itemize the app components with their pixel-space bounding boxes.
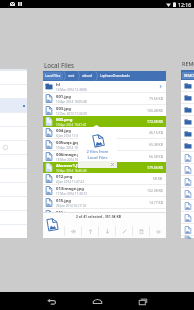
- staticText: 12 Dec 2013 11:32:29: [56, 112, 87, 116]
- staticText: 172.38 KB: [147, 119, 163, 124]
- button[interactable]: hl: [43, 81, 166, 92]
- staticText: 003.jpg: [56, 106, 71, 112]
- staticText: 006image.png: [56, 152, 86, 158]
- staticText: 100.48 KB: [147, 108, 163, 113]
- button[interactable]: [181, 200, 194, 211]
- button[interactable]: [181, 92, 194, 103]
- button[interactable]: Close: [111, 163, 114, 166]
- staticText: 2 of 41 selected - 351.94 KB: [76, 214, 121, 219]
- button[interactable]: sdcard: [80, 72, 95, 80]
- button[interactable]: Upload: [82, 224, 98, 238]
- staticText: 17 Mar 2014 11:30:12: [56, 192, 88, 196]
- button[interactable]: Home: [82, 292, 112, 310]
- staticText: LephoneDownloads: [100, 74, 130, 78]
- staticText: 102.38 KB: [147, 188, 163, 193]
- button[interactable]: [181, 116, 194, 127]
- staticText: sdcard: [82, 74, 93, 78]
- staticText: 18.64 KB: [149, 212, 163, 217]
- staticText: 179.56 KB: [147, 165, 163, 170]
- staticText: 26 Jan 2014 16:17:14: [56, 204, 86, 208]
- button[interactable]: [0, 141, 27, 154]
- staticText: 10 Apr 2014 10:48:52: [56, 146, 87, 150]
- staticText: mnt: [68, 74, 75, 78]
- staticText: 2 files from Local Files: [83, 149, 112, 160]
- staticText: 46.16 KB: [149, 130, 163, 135]
- button[interactable]: [181, 164, 194, 175]
- button[interactable]: Download: [99, 224, 115, 238]
- staticText: 6 Jan 2014 11:31:34: [56, 134, 85, 138]
- button[interactable]: Edit: [116, 224, 132, 238]
- staticText: 66.38 KB: [149, 154, 163, 159]
- staticText: 12:16: [178, 1, 192, 8]
- button[interactable]: [181, 236, 194, 238]
- button[interactable]: 015.jpg: [43, 197, 166, 208]
- staticText: 10 Apr 2014 10:41:41: [56, 123, 87, 127]
- button[interactable]: 003.jpg: [43, 105, 166, 116]
- staticText: 003.png: [56, 117, 73, 123]
- button[interactable]: 005wqs.jpg: [43, 139, 166, 150]
- button[interactable]: [181, 224, 194, 235]
- button[interactable]: [0, 99, 27, 112]
- button[interactable]: Recents: [128, 292, 158, 310]
- staticText: Local Files: [45, 74, 61, 78]
- button[interactable]: 016.jpg: [43, 209, 166, 220]
- button[interactable]: Local Files: [43, 72, 63, 80]
- button[interactable]: [181, 128, 194, 139]
- button[interactable]: LephoneDownloads: [98, 72, 132, 80]
- staticText: 015.jpg: [56, 198, 71, 204]
- button[interactable]: 001.jpg: [43, 93, 166, 104]
- staticText: 10 Apr 2014 16:45:45: [56, 169, 87, 173]
- staticText: hl: [56, 82, 60, 88]
- staticText: 013image.jpg: [56, 186, 84, 192]
- button[interactable]: [181, 80, 194, 91]
- button[interactable]: Delete: [133, 224, 149, 238]
- button[interactable]: [181, 104, 194, 115]
- staticText: REMOTE: [182, 60, 194, 67]
- staticText: 005wqs.jpg: [56, 140, 80, 146]
- staticText: 79.56 KB: [149, 96, 163, 101]
- button[interactable]: [181, 140, 194, 151]
- staticText: REMOTE: [184, 73, 194, 78]
- button[interactable]: [181, 188, 194, 199]
- staticText: 58 KB: [153, 176, 163, 181]
- staticText: 012.png: [56, 174, 73, 180]
- staticText: Local Files: [44, 61, 75, 69]
- staticText: 14.77 KB: [149, 200, 163, 205]
- staticText: Abcnew1.JPG: [56, 163, 84, 169]
- staticText: 10 Apr 2014 10:09:48: [56, 100, 87, 104]
- button[interactable]: 012.png: [43, 173, 166, 184]
- button[interactable]: mnt: [66, 72, 77, 80]
- button[interactable]: 006image.png: [43, 151, 166, 162]
- button[interactable]: 003.png: [43, 116, 166, 127]
- button[interactable]: [181, 152, 194, 163]
- button[interactable]: Share: [150, 224, 166, 238]
- button[interactable]: 004.jpg: [43, 127, 166, 138]
- staticText: 4 Jan 2014 11:47:22: [56, 180, 85, 184]
- staticText: 004.jpg: [56, 128, 71, 134]
- button[interactable]: [181, 212, 194, 223]
- button[interactable]: [181, 176, 194, 187]
- button[interactable]: Back: [36, 292, 66, 310]
- button[interactable]: 013image.jpg: [43, 185, 166, 196]
- staticText: 18 Mar 2014 16:31:08: [56, 158, 88, 162]
- staticText: 14 Mar 2014 12:38:06: [56, 88, 88, 92]
- staticText: 001.jpg: [56, 94, 71, 100]
- staticText: 3 Feb 2014 10:12:33: [56, 216, 85, 220]
- button[interactable]: Abcnew1.JPG: [43, 162, 166, 173]
- button[interactable]: Preview: [65, 224, 81, 238]
- staticText: 65.38 KB: [149, 142, 163, 147]
- staticText: 016.jpg: [56, 210, 71, 216]
